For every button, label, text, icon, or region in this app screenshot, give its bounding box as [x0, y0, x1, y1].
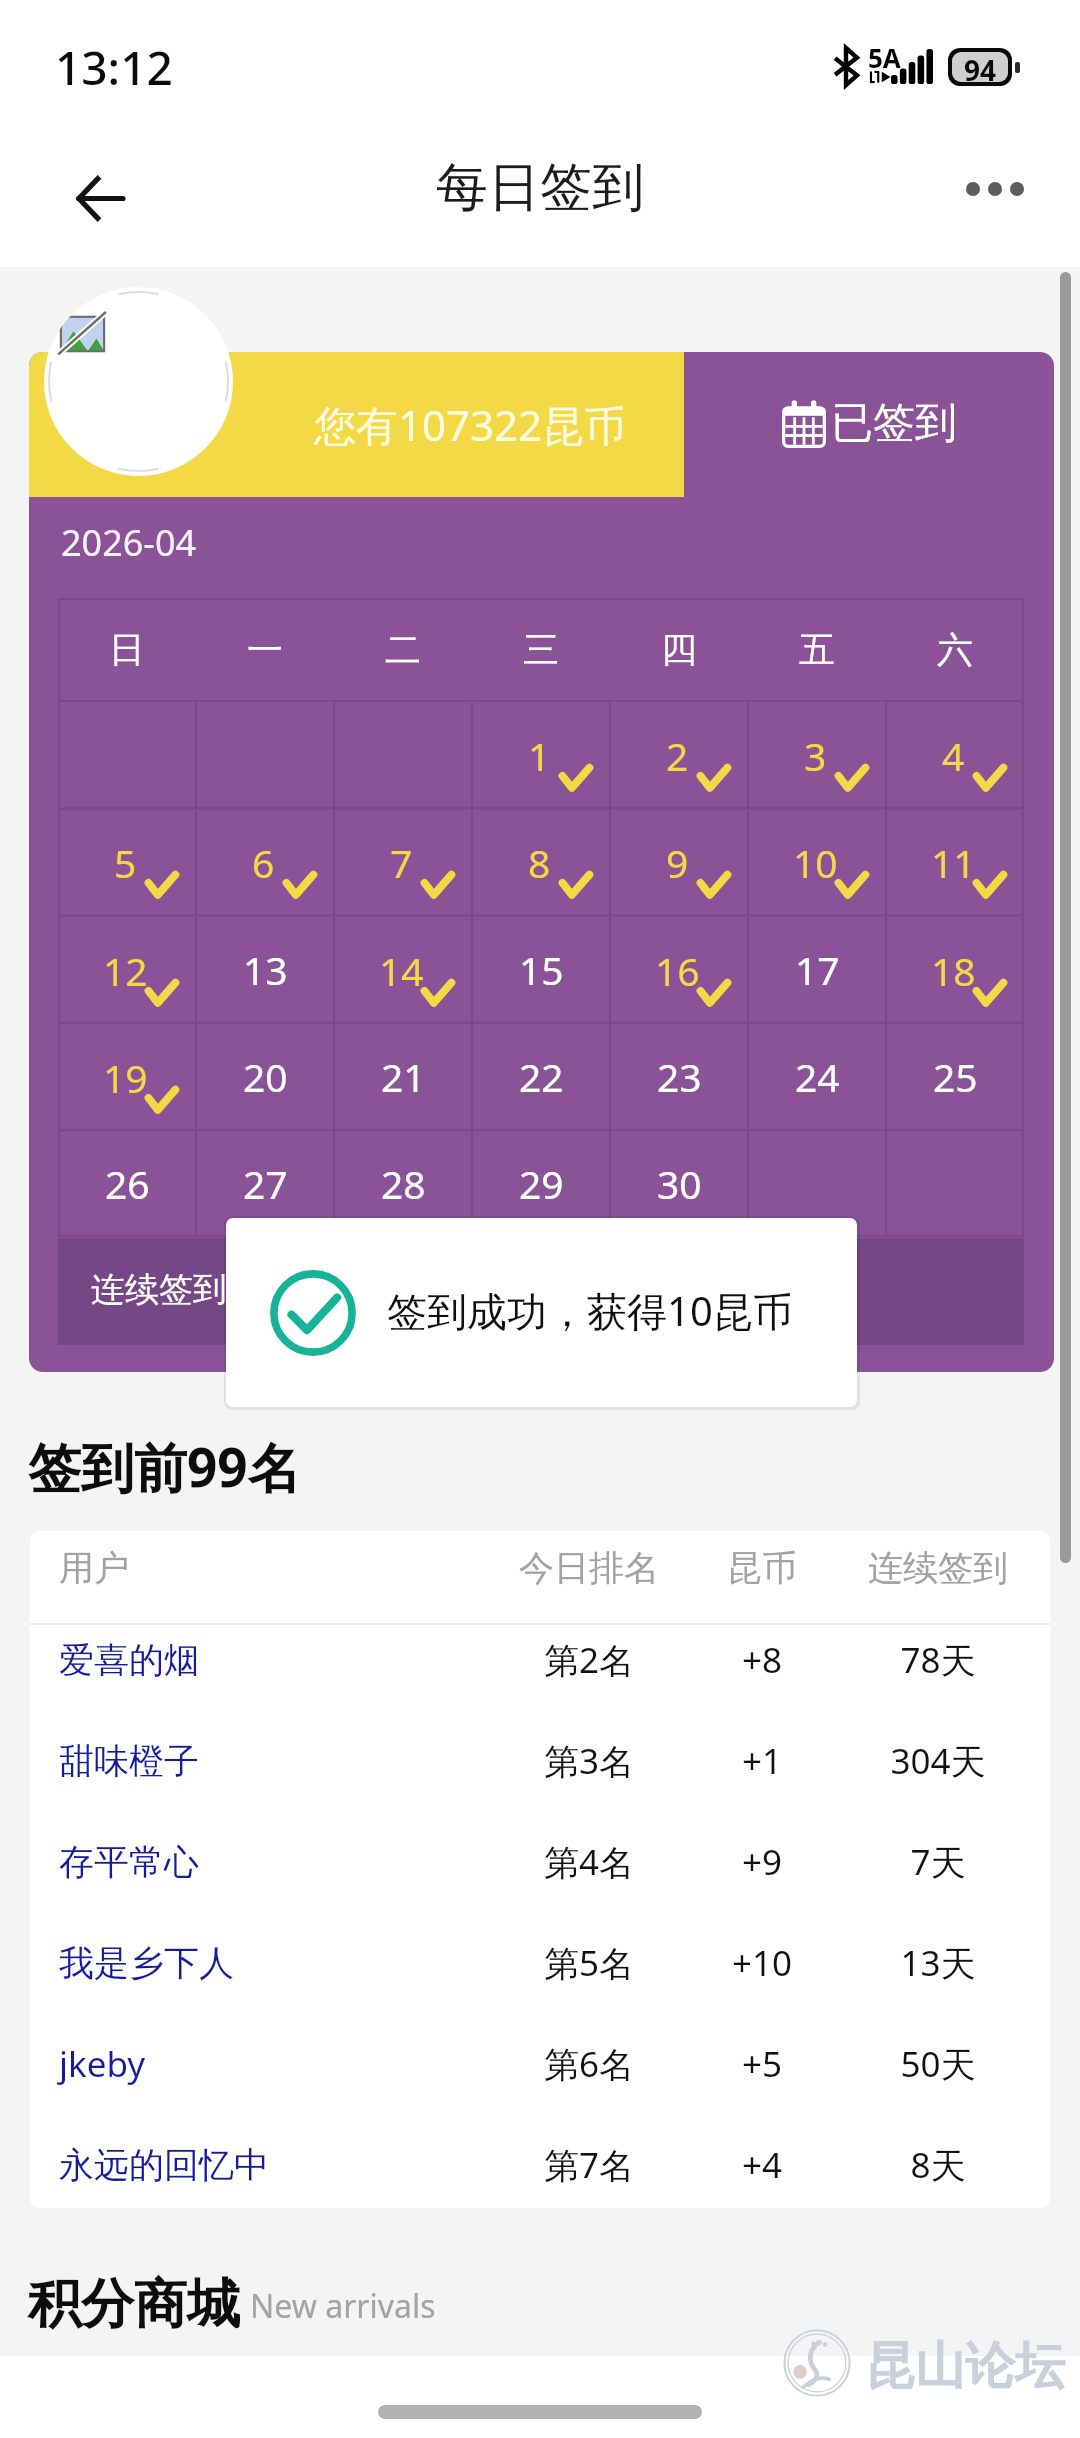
staticText: 我是乡下人 [59, 1941, 234, 1985]
staticText: 9 [666, 836, 689, 889]
button[interactable]: 19 [58, 1023, 196, 1130]
staticText: 已签到 [831, 397, 957, 450]
button[interactable]: 27 [196, 1130, 334, 1237]
staticText: New arrivals [250, 2284, 436, 2328]
button[interactable]: 14 [334, 916, 472, 1023]
staticText: 连续签到 [818, 1546, 1050, 1590]
staticText: 一 [247, 627, 283, 672]
staticText: 27 [243, 1157, 288, 1210]
staticText: 1 [528, 729, 551, 782]
staticText: 第5名 [469, 1939, 709, 1987]
button[interactable]: 永远的回忆中 [30, 2129, 1050, 2208]
staticText: +1 [642, 1737, 882, 1785]
staticText: 2026-04 [61, 518, 197, 567]
button[interactable]: 17 [748, 916, 886, 1023]
button[interactable]: 8 [472, 808, 610, 915]
staticText: 每日签到 [436, 155, 644, 221]
staticText: 7天 [818, 1838, 1050, 1886]
staticText: 第6名 [469, 2040, 709, 2088]
staticText: 永远的回忆中 [59, 2143, 269, 2187]
staticText: 13天 [818, 1939, 1050, 1987]
button[interactable]: 11 [886, 808, 1024, 915]
staticText: 78天 [818, 1636, 1050, 1684]
button[interactable]: 7 [334, 808, 472, 915]
staticText: 4 [942, 729, 965, 782]
staticText: 今日排名 [469, 1546, 709, 1590]
button[interactable]: 我是乡下人 [30, 1927, 1050, 2028]
staticText: 爱喜的烟 [59, 1638, 199, 1682]
button[interactable]: 26 [58, 1130, 196, 1237]
button[interactable]: 20 [196, 1023, 334, 1130]
button[interactable]: 5 [58, 808, 196, 915]
staticText: 23 [657, 1050, 702, 1103]
staticText: 26 [105, 1157, 150, 1210]
staticText: 5 [114, 836, 137, 889]
button[interactable]: 已签到 [684, 352, 1054, 497]
staticText: 15 [519, 943, 564, 996]
staticText: 5A [868, 40, 901, 75]
button[interactable]: 10 [748, 808, 886, 915]
staticText: 积分商城 [28, 2271, 240, 2338]
staticText: 8天 [818, 2141, 1050, 2189]
staticText: 50天 [818, 2040, 1050, 2088]
staticText: 21 [381, 1050, 426, 1103]
staticText: 用户 [59, 1546, 129, 1590]
button[interactable]: 15 [472, 916, 610, 1023]
staticText: +4 [642, 2141, 882, 2189]
button[interactable]: jkeby [30, 2028, 1050, 2129]
button[interactable]: 24 [748, 1023, 886, 1130]
staticText: 四 [661, 627, 697, 672]
staticText: 7 [390, 836, 413, 889]
staticText: 30 [657, 1157, 702, 1210]
staticText: 第7名 [469, 2141, 709, 2189]
button[interactable]: 29 [472, 1130, 610, 1237]
staticText: 94 [964, 51, 997, 81]
staticText: 19 [103, 1051, 148, 1104]
button[interactable]: 12 [58, 916, 196, 1023]
button[interactable]: 30 [610, 1130, 748, 1237]
staticText: 三 [523, 627, 559, 672]
staticText: 签到成功，获得10昆币 [387, 1283, 793, 1338]
button[interactable]: 18 [886, 916, 1024, 1023]
staticText: 13 [243, 943, 288, 996]
button[interactable]: Back [55, 154, 145, 244]
staticText: 第3名 [469, 1737, 709, 1785]
button[interactable]: 21 [334, 1023, 472, 1130]
staticText: +9 [642, 1838, 882, 1886]
staticText: 28 [381, 1157, 426, 1210]
staticText: 第4名 [469, 1838, 709, 1886]
staticText: 2 [666, 729, 689, 782]
button[interactable]: 6 [196, 808, 334, 915]
staticText: +5 [642, 2040, 882, 2088]
staticText: 8 [528, 836, 551, 889]
button[interactable]: 28 [334, 1130, 472, 1237]
button[interactable]: 2 [610, 701, 748, 808]
staticText: 第2名 [469, 1636, 709, 1684]
button[interactable]: 甜味橙子 [30, 1725, 1050, 1826]
staticText: 13:12 [55, 36, 173, 99]
button[interactable]: 22 [472, 1023, 610, 1130]
staticText: 14 [379, 944, 424, 997]
button[interactable]: 存平常心 [30, 1826, 1050, 1927]
staticText: 12 [103, 944, 148, 997]
staticText: 您有107322昆币 [314, 396, 627, 453]
button[interactable]: 13 [196, 916, 334, 1023]
button[interactable]: 25 [886, 1023, 1024, 1130]
staticText: 20 [243, 1050, 288, 1103]
staticText: 16 [655, 944, 700, 997]
button[interactable]: 爱喜的烟 [30, 1624, 1050, 1725]
button[interactable]: 3 [748, 701, 886, 808]
button[interactable]: 1 [472, 701, 610, 808]
button[interactable]: 9 [610, 808, 748, 915]
staticText: +8 [642, 1636, 882, 1684]
staticText: 17 [795, 943, 840, 996]
button[interactable]: 4 [886, 701, 1024, 808]
staticText: +10 [642, 1939, 882, 1987]
button[interactable]: 16 [610, 916, 748, 1023]
button[interactable]: More options [950, 144, 1040, 234]
staticText: 29 [519, 1157, 564, 1210]
staticText: 304天 [818, 1737, 1050, 1785]
button[interactable]: 23 [610, 1023, 748, 1130]
staticText: 10 [793, 836, 838, 889]
button[interactable]: User avatar [44, 287, 233, 476]
